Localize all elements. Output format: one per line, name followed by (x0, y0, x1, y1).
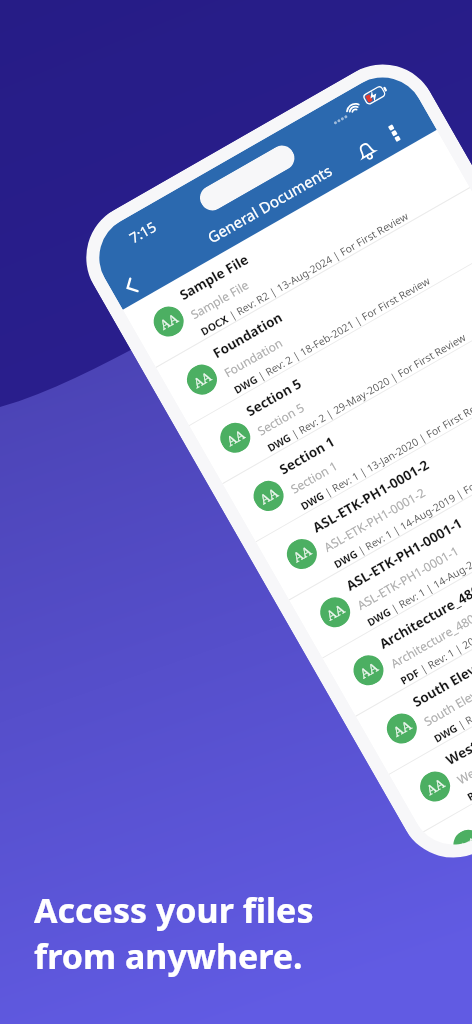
button[interactable]: More options (379, 117, 410, 149)
staticText: Section 5 (243, 374, 305, 420)
button[interactable]: AA (156, 188, 472, 426)
staticText: PDF (398, 665, 422, 687)
staticText: AA (423, 774, 448, 799)
button[interactable]: AA (123, 130, 470, 368)
staticText: DWG (265, 430, 293, 455)
button[interactable]: AA (189, 246, 472, 484)
staticText: Section 1 (287, 457, 341, 497)
staticText: DWG (231, 372, 260, 397)
button[interactable]: Back (111, 266, 150, 306)
staticText: Foundation (221, 334, 285, 380)
button[interactable]: AA (323, 479, 472, 717)
staticText: DOCX (198, 312, 231, 339)
button[interactable]: AA (356, 537, 472, 775)
staticText: Section 1 (276, 432, 338, 478)
staticText: Sample File (176, 250, 252, 304)
staticText: | Rev: 1 | 13-Jan-2020 | For First Revie… (320, 391, 472, 501)
staticText: Section 5 (254, 399, 307, 438)
staticText: | Rev: 1 | 14-Aug-2019 | For First Revie… (353, 447, 472, 559)
staticText: | Rev: 1 | 14-Aug-2019 | For First Revie… (386, 505, 472, 617)
staticText: | Rev: R2 | 13-Aug-2024 | For First Revi… (224, 209, 411, 324)
staticText: South Elevation (421, 671, 472, 729)
staticText: South Elevation (409, 643, 472, 711)
staticText: AA (156, 309, 182, 334)
staticText: | Rev: 1 | 20-Jun-2019 | For First Revie… (415, 567, 472, 678)
staticText: DWG (331, 547, 360, 571)
staticText: | Rev: 1 | 11-Jun-2019 | For First Revie… (453, 623, 472, 733)
staticText: DWG (365, 605, 393, 629)
staticText: ASL-ETK-PH1-0001-2 (321, 484, 428, 555)
staticText: General Documents (204, 160, 336, 247)
button[interactable]: AA (422, 653, 472, 860)
staticText: AA (323, 599, 348, 624)
staticText: 7:15 (126, 217, 160, 247)
staticText: West Elevation (454, 732, 472, 787)
button[interactable]: AA (289, 420, 472, 659)
staticText: Sample File (188, 276, 252, 322)
button[interactable]: AA (389, 595, 472, 833)
staticText: Architecture_4801 (376, 577, 472, 653)
staticText: AA (190, 367, 215, 392)
staticText: AA (389, 716, 415, 741)
staticText: AA (256, 483, 282, 508)
staticText: AA (290, 541, 315, 566)
staticText: Access your files (34, 887, 314, 933)
staticText: Foundation (209, 308, 286, 362)
staticText: West Elevation (443, 704, 472, 769)
staticText: ASL-ETK-PH1-0001-1 (354, 542, 462, 613)
staticText: DWG (298, 488, 327, 513)
staticText: DWG (431, 721, 460, 746)
staticText: | Rev: 2 | 18-Feb-2021 | For First Revie… (253, 273, 433, 384)
staticText: AA (356, 657, 382, 683)
button[interactable]: AA (256, 362, 472, 600)
staticText: ASL-ETK-PH1-0001-2 (309, 456, 432, 536)
staticText: | Rev: 2 | 29-May-2020 | For First Revie… (286, 330, 469, 443)
button[interactable]: AA (223, 304, 472, 542)
staticText: Architecture_4801 (387, 606, 472, 671)
staticText: from anywhere. (34, 933, 303, 979)
button[interactable]: Notifications (347, 131, 386, 171)
staticText: PDF (464, 782, 472, 804)
staticText: AA (456, 832, 472, 847)
staticText: ASL-ETK-PH1-0001-1 (343, 514, 465, 595)
staticText: AA (223, 425, 248, 450)
